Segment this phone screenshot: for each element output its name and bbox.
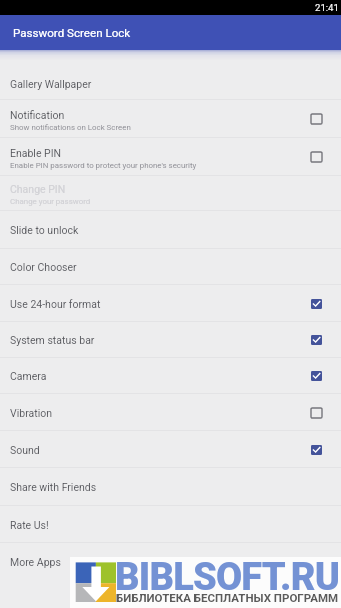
staticText: Rate Us! (10, 519, 49, 531)
button[interactable]: Password Screen Lock (0, 15, 341, 50)
staticText: Show notifications on Lock Screen (10, 123, 131, 132)
staticText: Color Chooser (10, 261, 77, 273)
button[interactable]: Slide to unlock (0, 211, 341, 249)
staticText: Camera (10, 370, 47, 382)
button[interactable]: Checked (311, 371, 322, 381)
button[interactable]: Change PIN (0, 176, 341, 211)
button[interactable]: Vibration (0, 394, 341, 431)
staticText: Sound (10, 444, 40, 456)
button[interactable]: Color Chooser (0, 249, 341, 285)
button[interactable]: Share with Friends (0, 468, 341, 506)
button[interactable]: More Apps (0, 543, 341, 580)
staticText: Password Screen Lock (13, 26, 131, 40)
button[interactable]: Unchecked (311, 408, 322, 418)
staticText: Notification (10, 109, 65, 121)
staticText: Change your password (10, 197, 91, 206)
button[interactable]: Unchecked (311, 152, 322, 162)
button[interactable]: System status bar (0, 322, 341, 358)
button[interactable]: Checked (311, 335, 322, 345)
button[interactable]: Unchecked (311, 114, 322, 124)
staticText: Change PIN (10, 183, 66, 195)
button[interactable]: Gallery Wallpaper (0, 50, 341, 100)
button[interactable]: Rate Us! (0, 506, 341, 543)
staticText: Use 24-hour format (10, 298, 101, 310)
button[interactable]: Checked (311, 445, 322, 455)
button[interactable]: Use 24-hour format (0, 285, 341, 322)
staticText: System status bar (10, 334, 95, 346)
staticText: Vibration (10, 407, 52, 419)
staticText: More Apps (10, 556, 61, 568)
staticText: 21:41 (315, 2, 339, 13)
staticText: БИБЛИОТЕКА БЕСПЛАТНЫХ ПРОГРАММ (116, 591, 339, 604)
button[interactable]: Enable PIN (0, 138, 341, 176)
button[interactable]: Notification (0, 100, 341, 138)
staticText: Share with Friends (10, 481, 97, 493)
staticText: Slide to unlock (10, 224, 79, 236)
staticText: Enable PIN password to protect your phon… (10, 161, 197, 170)
button[interactable]: Camera (0, 358, 341, 394)
staticText: BIBLSOFT.RU (115, 555, 340, 600)
button[interactable]: Checked (311, 299, 322, 309)
staticText: Enable PIN (10, 147, 62, 159)
button[interactable]: Sound (0, 431, 341, 468)
staticText: Gallery Wallpaper (10, 78, 92, 90)
